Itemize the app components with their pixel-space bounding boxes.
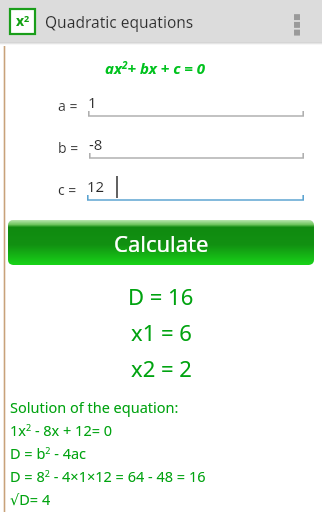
staticText: a = xyxy=(58,96,78,115)
staticText: b = xyxy=(58,138,79,157)
staticText: D = b2 - 4ac xyxy=(10,443,87,463)
button[interactable]: More options xyxy=(280,4,314,38)
staticText: 1 xyxy=(88,92,97,112)
staticText: x2 = 2 xyxy=(131,353,192,383)
staticText: Calculate xyxy=(114,228,209,258)
staticText: x1 = 6 xyxy=(131,317,192,347)
staticText: D = 82 - 4×1×12 = 64 - 48 = 16 xyxy=(10,466,206,486)
button[interactable]: 1 xyxy=(88,90,304,120)
button[interactable]: -8 xyxy=(89,132,304,162)
staticText: c = xyxy=(58,180,77,199)
staticText: ax2+ bx + c = 0 xyxy=(105,58,206,78)
staticText: Quadratic equations xyxy=(45,11,194,32)
staticText: -8 xyxy=(89,134,103,154)
button[interactable]: Calculate xyxy=(8,220,314,265)
staticText: Solution of the equation: xyxy=(10,397,179,417)
staticText: x2 xyxy=(16,11,30,30)
staticText: 12 xyxy=(87,176,105,196)
button[interactable]: 12 xyxy=(87,174,304,204)
staticText: D = 16 xyxy=(128,281,194,311)
staticText: √D= 4 xyxy=(10,489,51,509)
staticText: 1x2 - 8x + 12= 0 xyxy=(10,420,113,440)
